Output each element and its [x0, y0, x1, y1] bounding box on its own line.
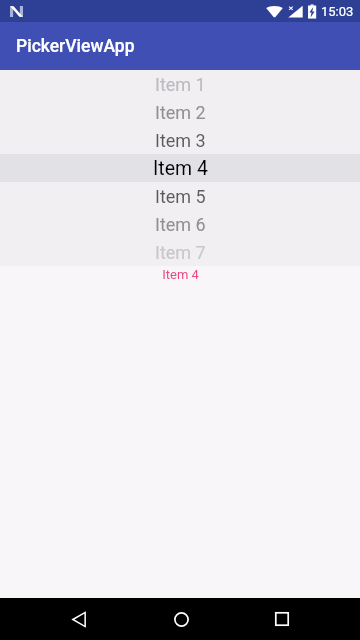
button[interactable]: Item 7: [0, 238, 360, 266]
button[interactable]: Item 6: [0, 210, 360, 238]
staticText: PickerViewApp: [16, 36, 135, 57]
button[interactable]: Item 4: [0, 154, 360, 182]
staticText: Item 3: [155, 130, 206, 151]
button[interactable]: Back: [51, 598, 107, 640]
staticText: Item 4: [162, 267, 199, 282]
staticText: Item 1: [155, 74, 206, 95]
staticText: Item 2: [155, 102, 206, 123]
button[interactable]: Item 2: [0, 98, 360, 126]
staticText: Item 4: [153, 157, 208, 180]
button[interactable]: Item 5: [0, 182, 360, 210]
staticText: Item 5: [155, 186, 206, 207]
staticText: Item 7: [155, 242, 206, 263]
button[interactable]: Recent apps: [254, 598, 310, 640]
staticText: 15:03: [321, 4, 354, 19]
staticText: Item 6: [155, 214, 206, 235]
button[interactable]: Item 1: [0, 70, 360, 98]
button[interactable]: Home: [153, 598, 209, 640]
button[interactable]: Item 3: [0, 126, 360, 154]
